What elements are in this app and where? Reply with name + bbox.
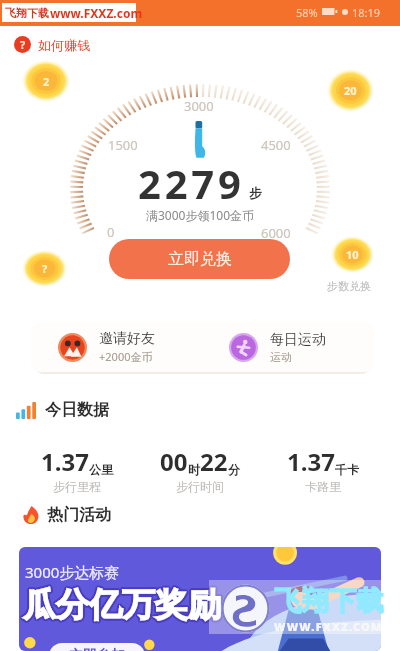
staticText: 4500 [261, 136, 291, 152]
button[interactable]: Coin ? [22, 250, 67, 287]
staticText: 20 [344, 83, 357, 98]
staticText: 瓜分亿万奖励 [23, 582, 221, 624]
staticText: 2279 [138, 156, 245, 210]
staticText: 运动 [270, 350, 292, 364]
staticText: 今日数据 [45, 400, 109, 420]
staticText: 3000步达标赛 [25, 562, 120, 582]
staticText: 公里 [89, 462, 113, 477]
button[interactable]: 立即兑换 [109, 239, 290, 279]
staticText: 瓜分亿万奖励 [25, 584, 223, 626]
button[interactable]: Coin 2 [22, 60, 70, 102]
staticText: www.FXXZ.com [50, 5, 143, 21]
staticText: 瓜分亿万奖励 [23, 583, 221, 625]
staticText: 瓜分亿万奖励 [24, 582, 222, 624]
staticText: 0 [107, 223, 115, 239]
staticText: 步行里程 [53, 479, 101, 494]
button[interactable]: 立即参加 [49, 643, 145, 651]
staticText: 瓜分亿万奖励 [23, 586, 221, 628]
staticText: 邀请好友 [99, 330, 155, 348]
staticText: 瓜分亿万奖励 [22, 583, 220, 625]
button[interactable]: 3000步达标赛 [19, 547, 381, 651]
staticText: 每日运动 [270, 331, 326, 349]
staticText: WWW.FXXZ.COM [274, 619, 383, 634]
staticText: 卡路里 [305, 479, 341, 494]
staticText: 瓜分亿万奖励 [22, 585, 220, 627]
button[interactable]: 邀请好友 [31, 322, 202, 372]
staticText: 瓜分亿万奖励 [21, 584, 219, 626]
staticText: ? [42, 261, 48, 276]
staticText: 步行时间 [176, 479, 224, 494]
staticText: 飞翔下载 [5, 6, 49, 20]
staticText: 1.37 [287, 445, 335, 478]
button[interactable]: Coin 10 [331, 236, 374, 273]
staticText: 10 [346, 247, 359, 262]
staticText: 58% [296, 5, 318, 20]
staticText: 瓜分亿万奖励 [22, 582, 220, 624]
staticText: 瓜分亿万奖励 [21, 583, 219, 625]
staticText: 瓜分亿万奖励 [25, 585, 223, 627]
staticText: 瓜分亿万奖励 [24, 583, 222, 625]
staticText: 热门活动 [47, 505, 111, 525]
staticText: 瓜分亿万奖励 [22, 584, 220, 626]
staticText: 立即参加 [69, 647, 125, 651]
staticText: 18:19 [352, 5, 381, 20]
staticText: 1.37 [41, 445, 89, 478]
staticText: 如何赚钱 [38, 37, 90, 53]
staticText: 00 [160, 445, 188, 478]
staticText: 时 [188, 462, 200, 477]
button[interactable]: 每日运动 [202, 322, 374, 372]
staticText: 瓜分亿万奖励 [25, 583, 223, 625]
staticText: 瓜分亿万奖励 [23, 585, 221, 627]
staticText: 满3000步领100金币 [146, 207, 255, 223]
staticText: 3000 [184, 97, 214, 113]
button[interactable]: ? [14, 36, 90, 53]
staticText: 瓜分亿万奖励 [21, 585, 219, 627]
button[interactable]: Coin 20 [327, 69, 374, 112]
staticText: 千卡 [335, 462, 359, 477]
staticText: 22 [200, 445, 228, 478]
staticText: 瓜分亿万奖励 [23, 584, 221, 626]
staticText: 瓜分亿万奖励 [24, 584, 222, 626]
staticText: 瓜分亿万奖励 [24, 585, 222, 627]
staticText: 立即兑换 [168, 249, 232, 269]
staticText: 飞翔下载 [274, 584, 384, 618]
staticText: 1500 [108, 136, 138, 152]
staticText: 瓜分亿万奖励 [22, 586, 220, 628]
staticText: 6000 [261, 224, 291, 240]
staticText: ? [20, 37, 26, 52]
staticText: 分 [228, 462, 240, 477]
staticText: 瓜分亿万奖励 [24, 586, 222, 628]
staticText: 步 [249, 185, 262, 201]
staticText: 步数兑换 [327, 279, 371, 293]
staticText: +2000金币 [99, 349, 153, 364]
staticText: 2 [43, 74, 50, 89]
